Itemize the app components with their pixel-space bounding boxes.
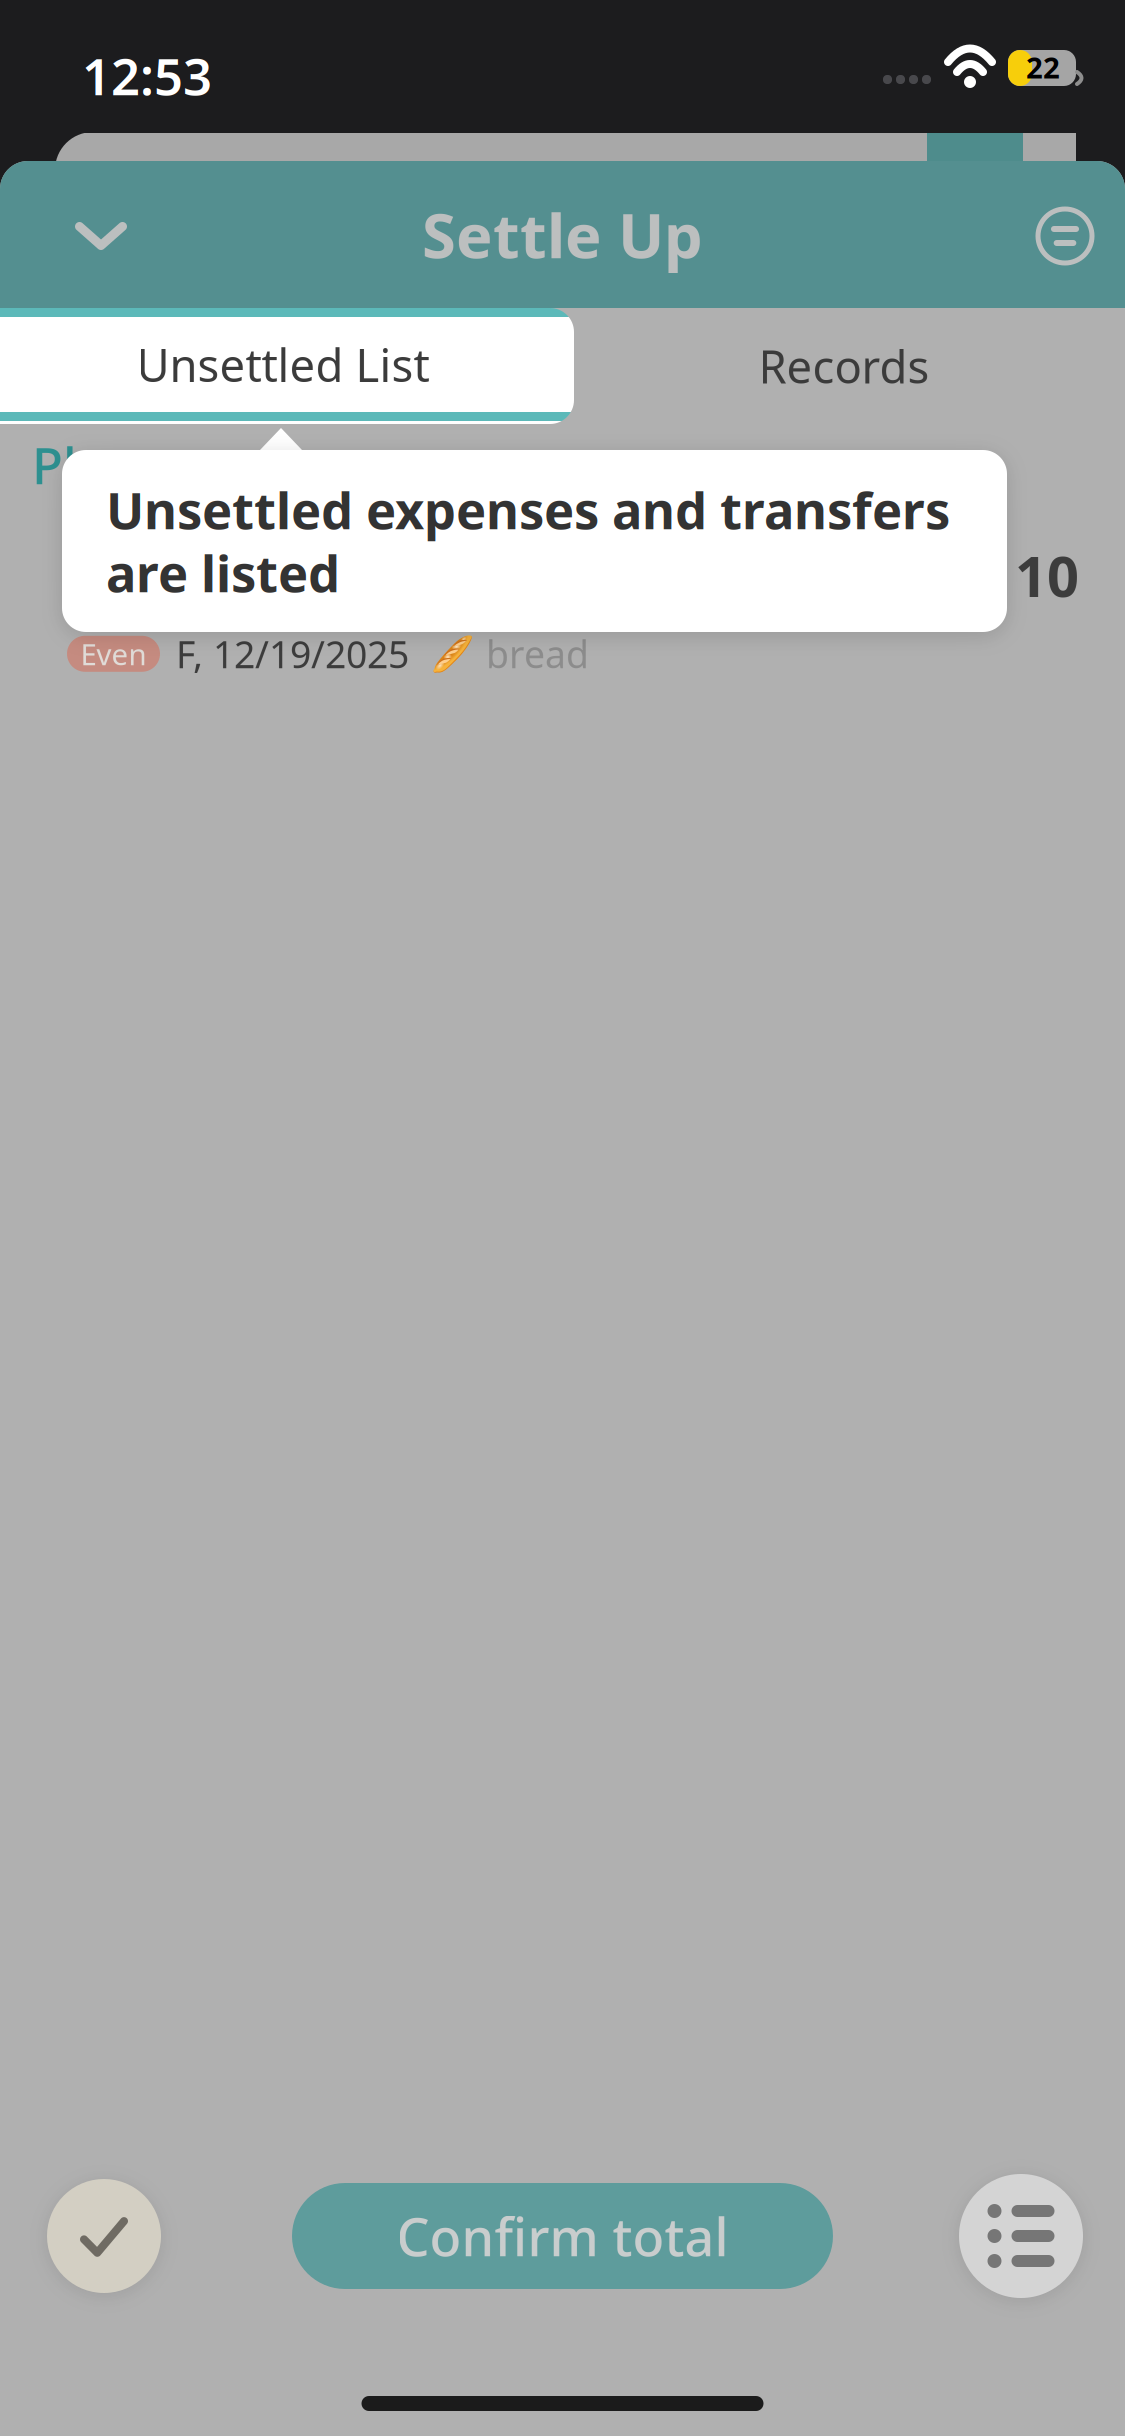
button[interactable]: Unsettled List <box>0 308 608 424</box>
button[interactable]: Planet <box>0 424 1125 694</box>
button[interactable]: Mark as settled <box>24 2156 184 2316</box>
staticText: Unsettled expenses and transfers <box>106 476 950 543</box>
staticText: Confirm total <box>396 2201 728 2271</box>
staticText: bread <box>486 629 589 679</box>
staticText: 12:53 <box>82 42 212 109</box>
staticText: 22 <box>1026 47 1060 86</box>
staticText: Settle Up <box>422 194 703 275</box>
button[interactable]: Settle up options <box>1000 172 1125 300</box>
staticText: 🥖 <box>431 634 474 674</box>
staticText: Planet <box>32 431 186 498</box>
button[interactable]: Close <box>36 172 166 300</box>
staticText: Even <box>80 634 146 673</box>
staticText: F, 12/19/2025 <box>176 629 409 679</box>
staticText: are listed <box>106 539 340 606</box>
staticText: 10 <box>1015 538 1079 612</box>
staticText: Unsettled List <box>136 334 429 395</box>
button[interactable]: Confirm total <box>292 2183 833 2289</box>
button[interactable]: Show records <box>941 2156 1101 2316</box>
staticText: Records <box>758 336 929 396</box>
button[interactable]: Records <box>563 308 1125 424</box>
